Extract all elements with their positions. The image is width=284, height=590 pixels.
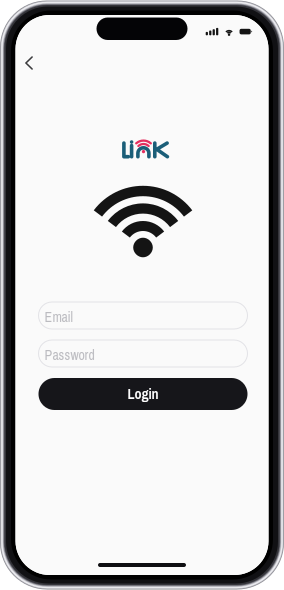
- button[interactable]: Login: [38, 378, 247, 410]
- staticText: Email: [44, 308, 73, 326]
- staticText: Login: [127, 384, 158, 403]
- button[interactable]: Password: [38, 340, 247, 367]
- button[interactable]: Back: [14, 48, 44, 78]
- button[interactable]: Email: [38, 302, 247, 329]
- staticText: Password: [44, 346, 94, 364]
